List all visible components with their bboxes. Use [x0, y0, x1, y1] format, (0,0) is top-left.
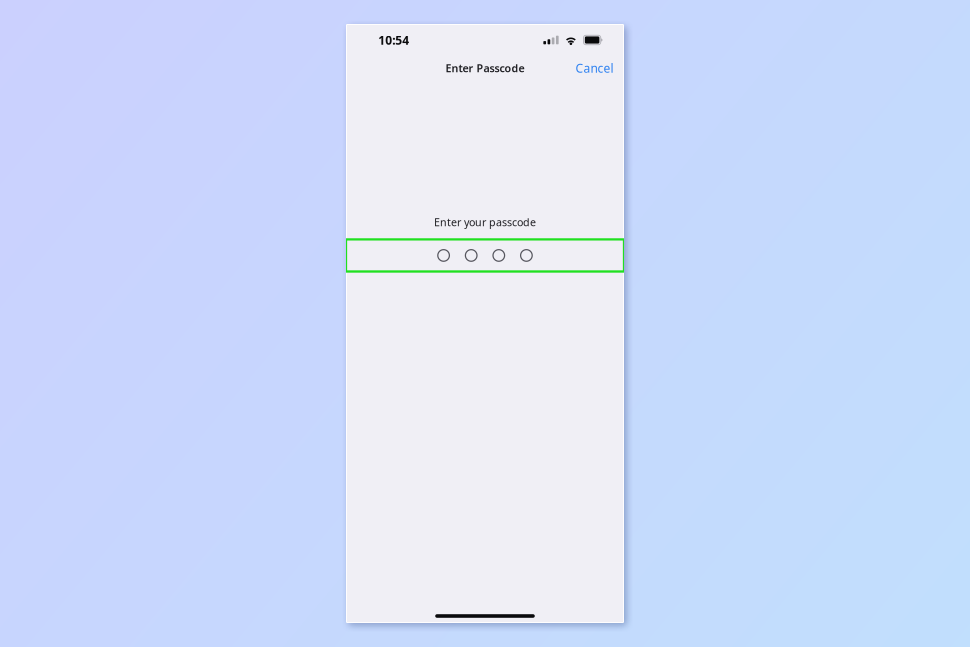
- button[interactable]: Cancel: [568, 53, 620, 83]
- staticText: Cancel: [575, 60, 613, 76]
- staticText: 10:54: [378, 32, 409, 48]
- staticText: Enter your passcode: [434, 215, 536, 229]
- button[interactable]: Enter your passcode: [346, 239, 624, 271]
- staticText: Enter Passcode: [445, 61, 524, 75]
